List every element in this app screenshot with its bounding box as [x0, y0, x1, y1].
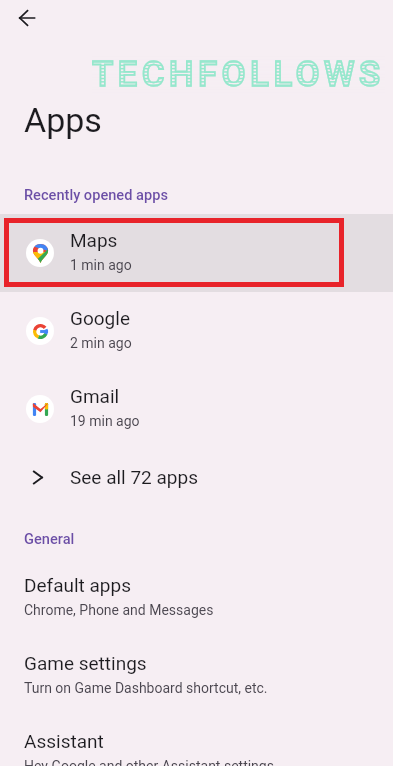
staticText: 1 min ago: [70, 257, 132, 273]
staticText: Assistant: [24, 730, 104, 752]
staticText: Chrome, Phone and Messages: [24, 602, 214, 618]
staticText: Default apps: [24, 574, 131, 596]
staticText: 19 min ago: [70, 413, 140, 429]
button[interactable]: Default apps: [0, 574, 393, 630]
staticText: Recently opened apps: [24, 186, 168, 203]
staticText: Apps: [24, 100, 102, 140]
staticText: Turn on Game Dashboard shortcut, etc.: [24, 680, 268, 696]
staticText: TECHFOLLOWS: [92, 54, 385, 95]
button[interactable]: See all 72 apps: [0, 448, 393, 506]
button[interactable]: Gmail: [0, 370, 393, 448]
button[interactable]: Google: [0, 292, 393, 370]
staticText: Google: [70, 307, 130, 329]
staticText: Hey Google and other Assistant settings: [24, 758, 274, 766]
button[interactable]: Game settings: [0, 652, 393, 708]
button[interactable]: Back: [7, 0, 47, 38]
button[interactable]: [0, 214, 393, 292]
staticText: 2 min ago: [70, 335, 132, 351]
button[interactable]: Maps: [0, 214, 393, 292]
button[interactable]: Assistant: [0, 730, 393, 766]
staticText: TECHFOLLOWS: [92, 54, 385, 95]
staticText: Maps: [70, 229, 118, 251]
staticText: Gmail: [70, 385, 120, 407]
staticText: General: [24, 530, 75, 547]
staticText: Game settings: [24, 652, 147, 674]
staticText: See all 72 apps: [70, 466, 198, 488]
